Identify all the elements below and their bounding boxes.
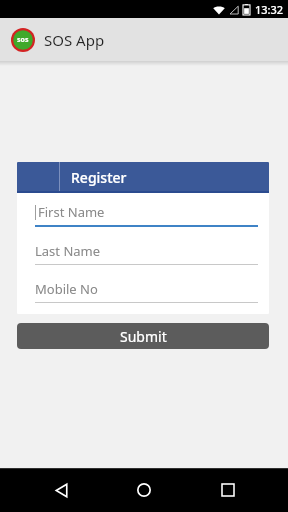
staticText: 13:32	[255, 2, 284, 17]
button[interactable]: Mobile No	[35, 280, 258, 303]
button[interactable]: Home	[121, 468, 167, 512]
button[interactable]: Submit	[17, 323, 269, 349]
button[interactable]: Back	[38, 468, 84, 512]
staticText: First Name	[38, 203, 105, 221]
button[interactable]: Recent apps	[205, 468, 251, 512]
staticText: SOS App	[44, 30, 105, 50]
button[interactable]: Last Name	[35, 242, 258, 265]
staticText: sos	[17, 35, 29, 45]
staticText: Mobile No	[35, 280, 98, 298]
staticText: Last Name	[35, 242, 101, 260]
staticText: Register	[71, 168, 127, 187]
staticText: Submit	[120, 327, 167, 346]
button[interactable]: First Name	[35, 203, 258, 227]
